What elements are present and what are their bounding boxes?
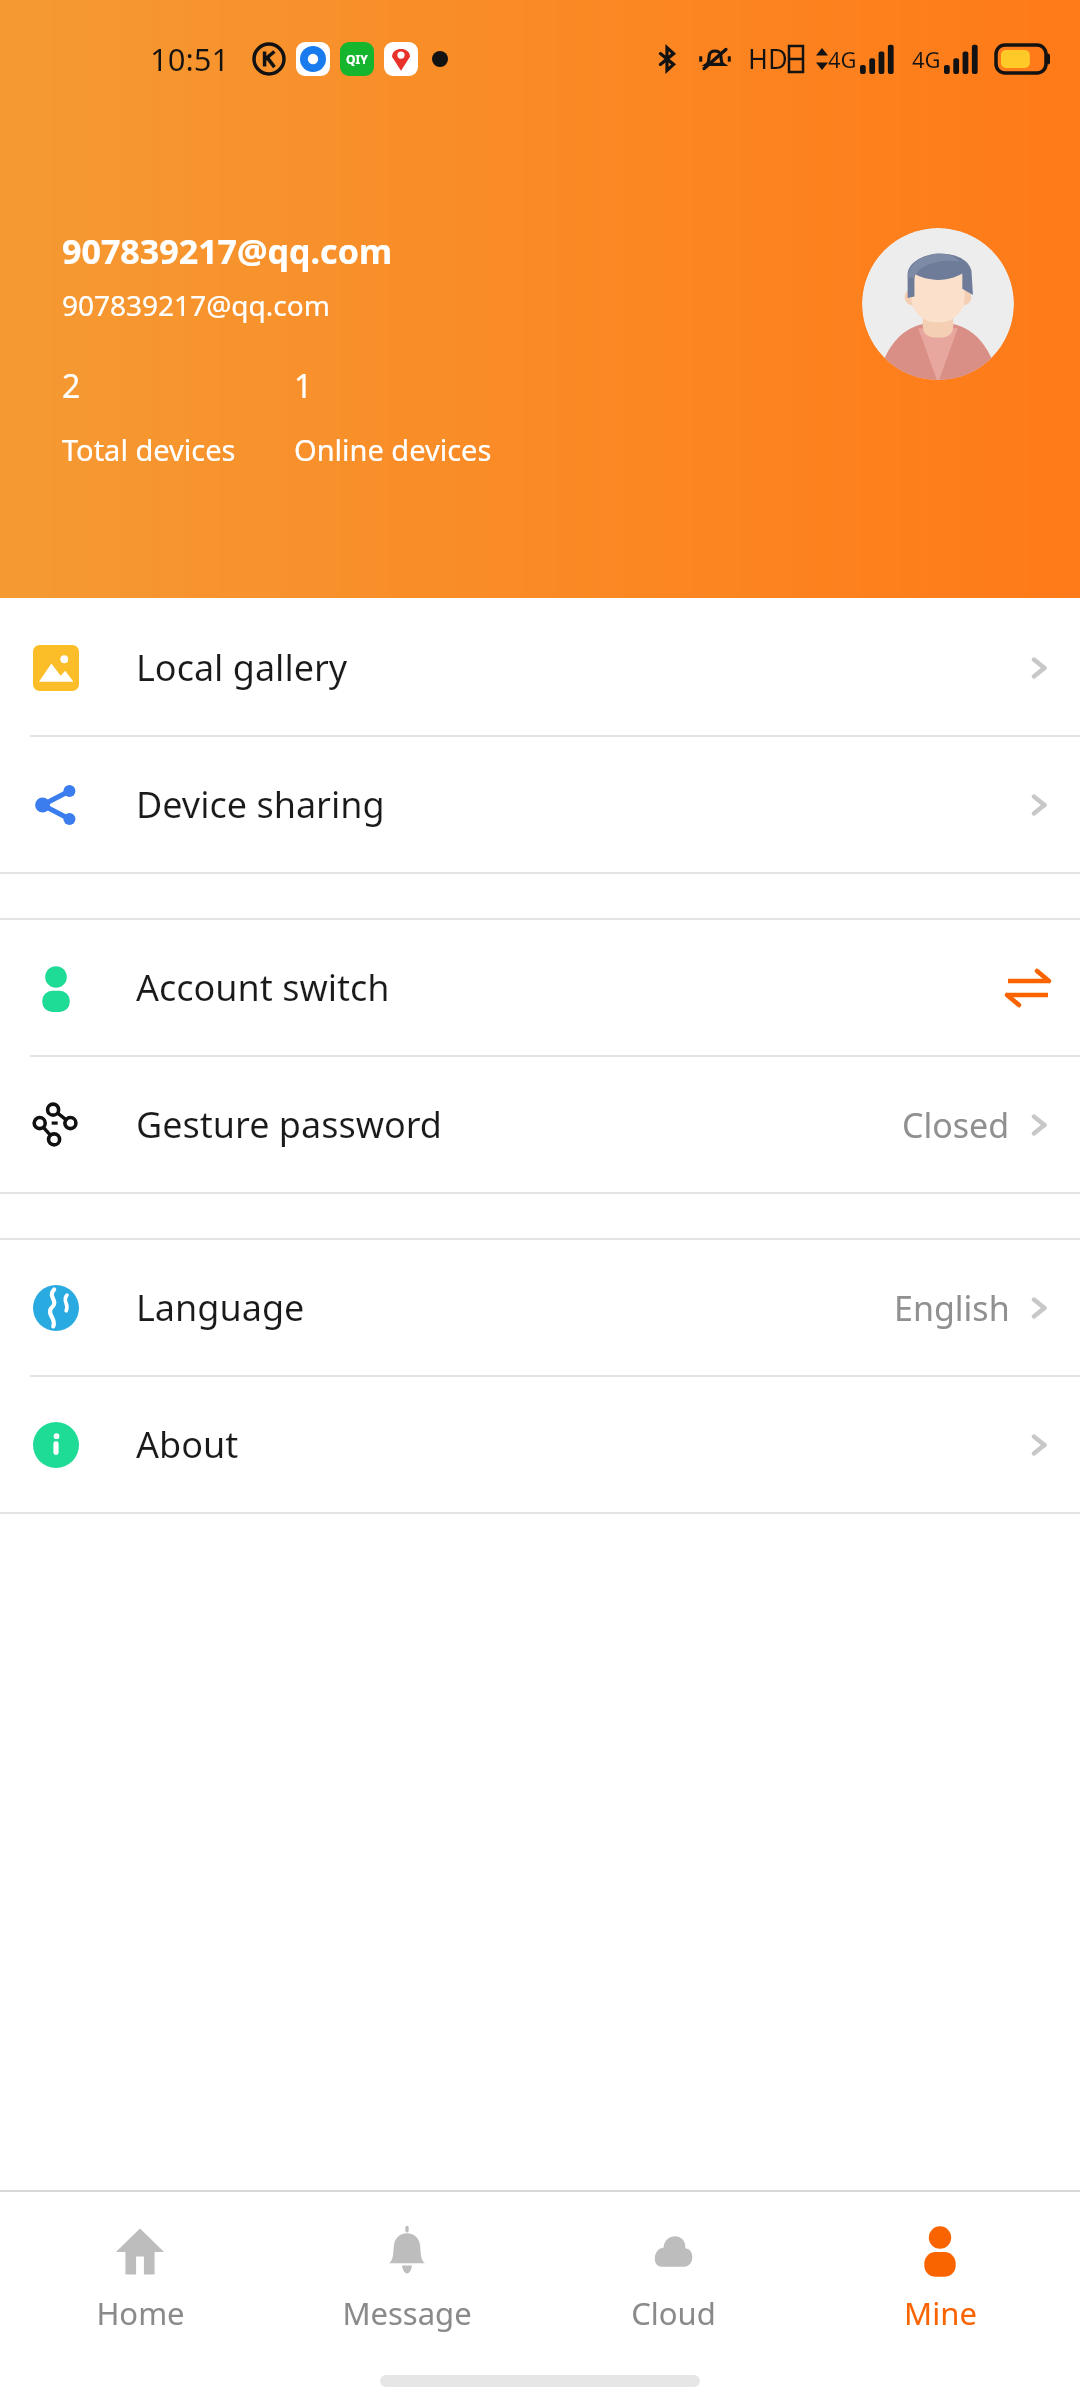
- staticText: HD: [748, 40, 788, 77]
- staticText: Cloud: [631, 2292, 716, 2334]
- staticText: Gesture password: [136, 1100, 443, 1149]
- staticText: Message: [342, 2292, 472, 2334]
- staticText: QIY: [346, 51, 368, 67]
- staticText: Total devices: [62, 430, 236, 469]
- staticText: Device sharing: [136, 780, 385, 829]
- staticText: Mine: [904, 2292, 977, 2334]
- button[interactable]: Cloud: [547, 2212, 799, 2342]
- staticText: 1: [294, 364, 313, 408]
- staticText: Closed: [902, 1102, 1010, 1148]
- staticText: Home: [96, 2292, 185, 2334]
- staticText: 907839217@qq.com: [62, 286, 330, 324]
- button[interactable]: Language: [0, 1240, 1080, 1375]
- staticText: 4G: [828, 44, 857, 74]
- staticText: English: [894, 1285, 1010, 1331]
- staticText: Local gallery: [136, 643, 348, 692]
- staticText: About: [136, 1420, 239, 1469]
- button[interactable]: Gesture password: [0, 1057, 1080, 1192]
- button[interactable]: Profile avatar: [862, 228, 1014, 380]
- staticText: 907839217@qq.com: [62, 228, 393, 274]
- staticText: Language: [136, 1283, 305, 1332]
- button[interactable]: Account switch: [0, 920, 1080, 1055]
- button[interactable]: Mine: [814, 2212, 1066, 2342]
- button[interactable]: Home: [14, 2212, 266, 2342]
- button[interactable]: Switch account: [1002, 962, 1054, 1014]
- button[interactable]: Message: [281, 2212, 533, 2342]
- staticText: 10:51: [150, 38, 230, 80]
- staticText: Account switch: [136, 963, 390, 1012]
- button[interactable]: About: [0, 1377, 1080, 1512]
- staticText: 2: [62, 364, 81, 408]
- button[interactable]: Device sharing: [0, 737, 1080, 872]
- staticText: Online devices: [294, 430, 492, 469]
- button[interactable]: Local gallery: [0, 600, 1080, 735]
- staticText: 4G: [912, 44, 941, 74]
